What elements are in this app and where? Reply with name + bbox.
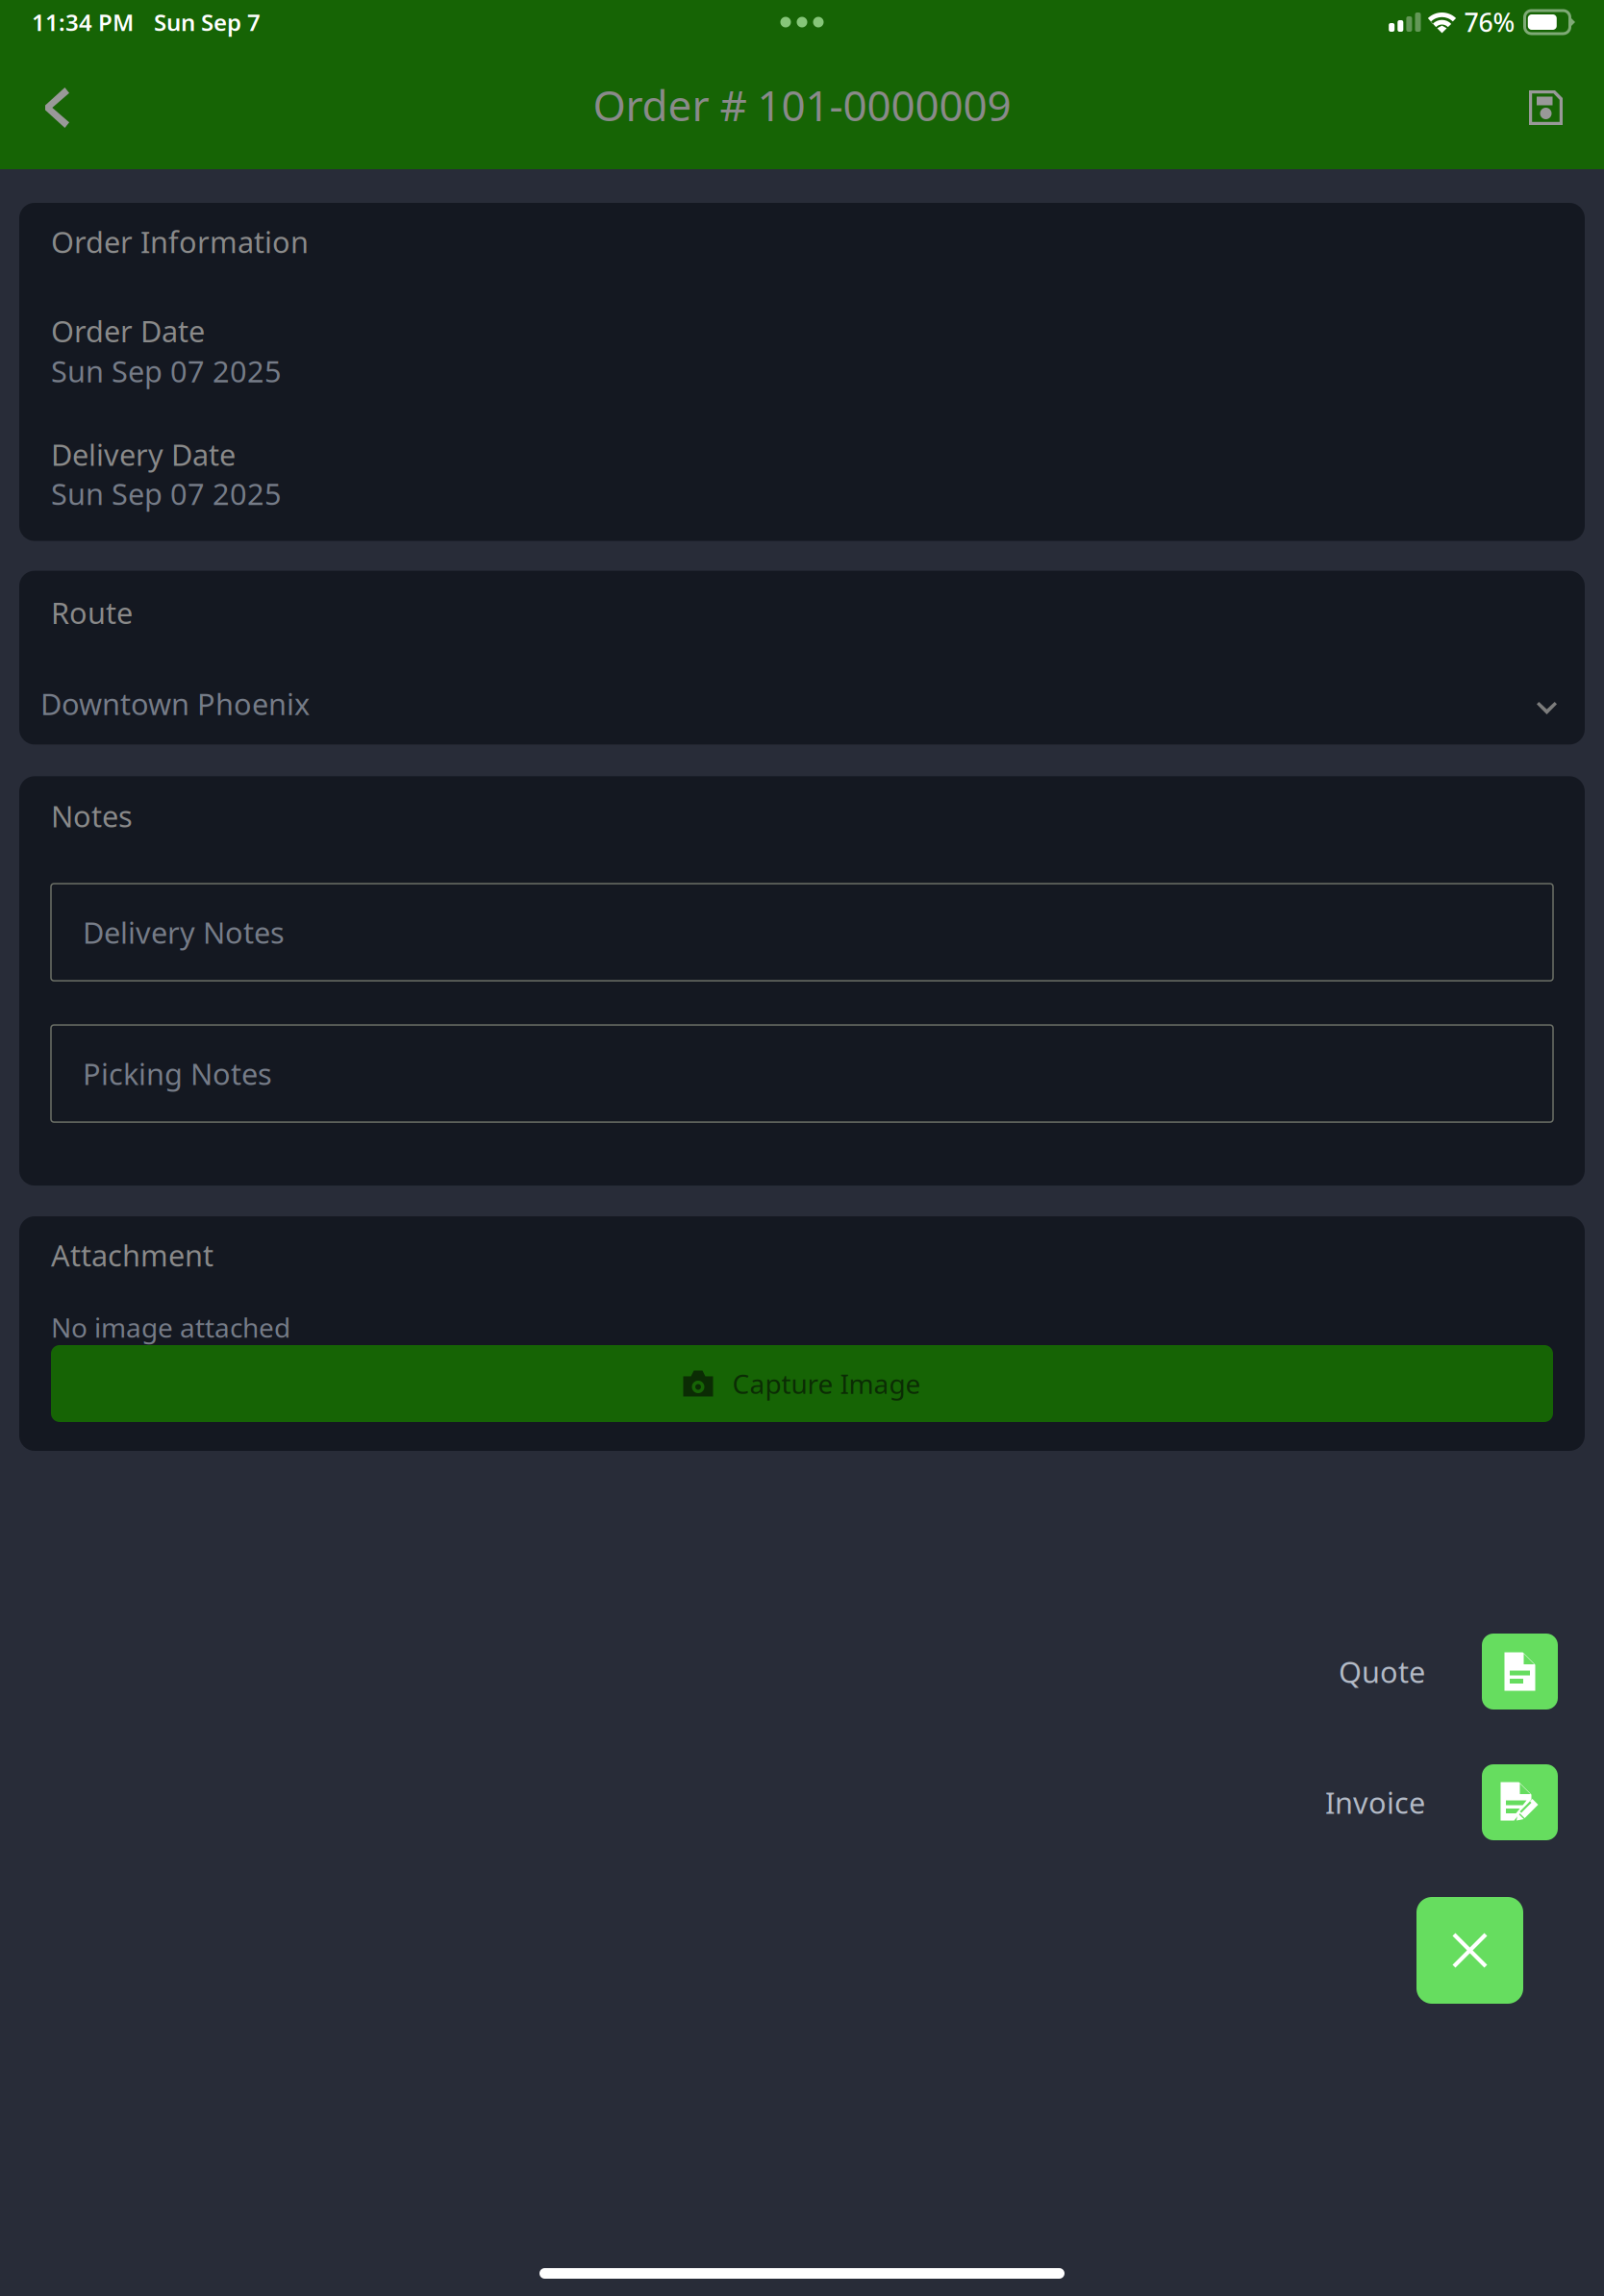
staticText: Quote	[1339, 1652, 1425, 1691]
staticText: Attachment	[51, 1236, 213, 1275]
staticText: Delivery Notes	[83, 913, 285, 952]
staticText: Picking Notes	[83, 1054, 272, 1093]
button[interactable]: Downtown Phoenix	[19, 673, 1585, 734]
staticText: Route	[51, 593, 133, 632]
staticText: Order Date	[51, 311, 205, 350]
button[interactable]: Invoice	[1482, 1764, 1558, 1840]
staticText: Sun Sep 07 2025	[51, 474, 282, 513]
staticText: Delivery Date	[51, 435, 236, 474]
staticText: Order Information	[51, 222, 309, 261]
staticText: No image attached	[51, 1309, 290, 1345]
staticText: Sun Sep 7	[154, 7, 261, 37]
button[interactable]: Quote	[1482, 1634, 1558, 1710]
button[interactable]: Back	[0, 65, 96, 148]
staticText: Invoice	[1325, 1783, 1425, 1822]
button[interactable]: Save	[1502, 65, 1604, 148]
button[interactable]: Capture Image	[19, 1345, 1585, 1422]
staticText: Notes	[51, 796, 133, 836]
staticText: Order # 101-0000009	[593, 77, 1011, 133]
staticText: Downtown Phoenix	[40, 684, 310, 723]
staticText: 11:34 PM	[32, 7, 134, 37]
button[interactable]: Close menu	[1416, 1897, 1523, 2004]
staticText: Capture Image	[732, 1366, 921, 1401]
staticText: Sun Sep 07 2025	[51, 351, 282, 390]
staticText: 76%	[1464, 5, 1515, 39]
